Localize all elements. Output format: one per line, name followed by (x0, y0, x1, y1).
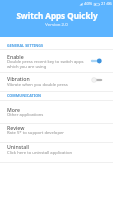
button[interactable]: Uninstall (0, 143, 113, 162)
staticText: 21:06 (101, 1, 112, 7)
button[interactable]: Vibration, off (88, 75, 106, 85)
staticText: 40% (84, 1, 93, 7)
staticText: Vibrate when you double press (7, 82, 68, 88)
staticText: COMMUNICATION (7, 93, 42, 98)
button[interactable]: Review (0, 124, 113, 142)
staticText: Review (7, 124, 25, 131)
button[interactable]: More (0, 100, 113, 123)
button[interactable]: Enable (0, 50, 113, 72)
staticText: Version 2.0 (45, 21, 68, 27)
staticText: Vibration (7, 75, 30, 82)
staticText: which you are using (7, 64, 47, 70)
staticText: Other applications (7, 112, 44, 118)
staticText: Enable (7, 53, 24, 60)
staticText: Double press recent key to switch apps (7, 59, 84, 65)
staticText: Switch Apps Quickly (16, 10, 98, 21)
staticText: GENERAL SETTINGS (7, 43, 44, 48)
button[interactable]: Vibration (0, 73, 113, 91)
staticText: Rate 5* to support developer (7, 130, 65, 136)
staticText: More (7, 106, 20, 113)
button[interactable]: Enable, on (88, 56, 106, 66)
staticText: Uninstall (7, 143, 30, 150)
staticText: Click here to uninstall application (7, 150, 73, 156)
